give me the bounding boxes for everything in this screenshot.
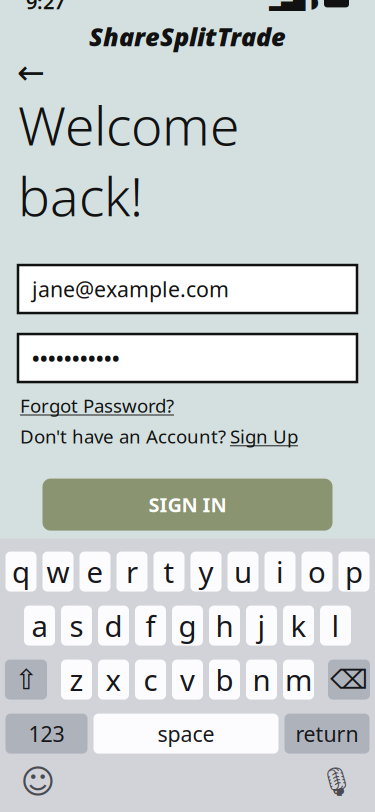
- staticText: ShareSplitTrade: [89, 20, 286, 53]
- staticText: c: [143, 660, 157, 699]
- staticText: ⇧: [14, 664, 37, 695]
- button[interactable]: z: [61, 660, 92, 700]
- staticText: e: [86, 552, 103, 591]
- staticText: u: [234, 552, 252, 591]
- staticText: y: [198, 552, 213, 591]
- button[interactable]: 123: [5, 714, 87, 754]
- staticText: w: [46, 552, 69, 591]
- button[interactable]: Shift: [5, 660, 47, 700]
- staticText: a: [31, 606, 47, 645]
- staticText: n: [252, 660, 270, 699]
- button[interactable]: Dictation: [315, 762, 359, 802]
- button[interactable]: n: [246, 660, 277, 700]
- staticText: k: [290, 606, 306, 645]
- button[interactable]: t: [153, 552, 184, 592]
- button[interactable]: return: [284, 714, 369, 754]
- staticText: q: [12, 552, 30, 591]
- button[interactable]: l: [320, 606, 351, 646]
- staticText: ←: [17, 53, 45, 91]
- staticText: f: [145, 606, 155, 645]
- staticText: return: [295, 719, 358, 748]
- button[interactable]: w: [42, 552, 73, 592]
- staticText: •••••••••••: [32, 345, 120, 371]
- staticText: ⌫: [330, 664, 368, 695]
- staticText: Don't have an Account?: [20, 424, 226, 449]
- button[interactable]: h: [209, 606, 240, 646]
- button[interactable]: m: [283, 660, 314, 700]
- button[interactable]: j: [246, 606, 277, 646]
- button[interactable]: Sign Up: [230, 424, 298, 449]
- staticText: d: [104, 606, 122, 645]
- button[interactable]: v: [172, 660, 203, 700]
- button[interactable]: p: [338, 552, 369, 592]
- button[interactable]: space: [93, 714, 278, 754]
- button[interactable]: SIGN IN: [42, 479, 332, 531]
- button[interactable]: b: [209, 660, 240, 700]
- staticText: 9:27: [26, 0, 65, 15]
- button[interactable]: x: [98, 660, 129, 700]
- button[interactable]: e: [79, 552, 110, 592]
- button[interactable]: a: [24, 606, 55, 646]
- staticText: o: [308, 552, 326, 591]
- staticText: ▂▄▆: [269, 0, 305, 10]
- staticText: Forgot Password?: [20, 393, 174, 418]
- button[interactable]: i: [264, 552, 295, 592]
- button[interactable]: d: [98, 606, 129, 646]
- staticText: Sign Up: [230, 424, 298, 449]
- staticText: r: [126, 552, 138, 591]
- staticText: ◗: [310, 0, 319, 11]
- button[interactable]: s: [61, 606, 92, 646]
- button[interactable]: r: [116, 552, 147, 592]
- staticText: jane@example.com: [32, 275, 229, 303]
- staticText: v: [180, 660, 195, 699]
- staticText: h: [215, 606, 233, 645]
- button[interactable]: Back: [14, 57, 48, 87]
- staticText: b: [215, 660, 233, 699]
- button[interactable]: c: [135, 660, 166, 700]
- button[interactable]: k: [283, 606, 314, 646]
- staticText: 123: [28, 719, 64, 748]
- staticText: SIGN IN: [148, 491, 226, 518]
- staticText: space: [157, 719, 214, 748]
- button[interactable]: g: [172, 606, 203, 646]
- button[interactable]: u: [227, 552, 258, 592]
- staticText: z: [69, 660, 83, 699]
- staticText: ☺: [20, 763, 55, 800]
- button[interactable]: o: [301, 552, 332, 592]
- staticText: 🎙: [319, 766, 355, 798]
- staticText: p: [345, 552, 363, 591]
- staticText: g: [178, 606, 196, 645]
- staticText: j: [257, 606, 265, 645]
- staticText: i: [276, 552, 284, 591]
- staticText: l: [331, 606, 339, 645]
- button[interactable]: q: [5, 552, 36, 592]
- staticText: Welcome back!: [18, 89, 239, 231]
- staticText: m: [285, 660, 312, 699]
- button[interactable]: f: [135, 606, 166, 646]
- button[interactable]: y: [190, 552, 221, 592]
- staticText: s: [69, 606, 83, 645]
- staticText: x: [105, 660, 121, 699]
- staticText: t: [163, 552, 174, 591]
- button[interactable]: Backspace: [328, 660, 370, 700]
- button[interactable]: Forgot Password?: [20, 393, 174, 418]
- button[interactable]: Emoji: [16, 762, 60, 802]
